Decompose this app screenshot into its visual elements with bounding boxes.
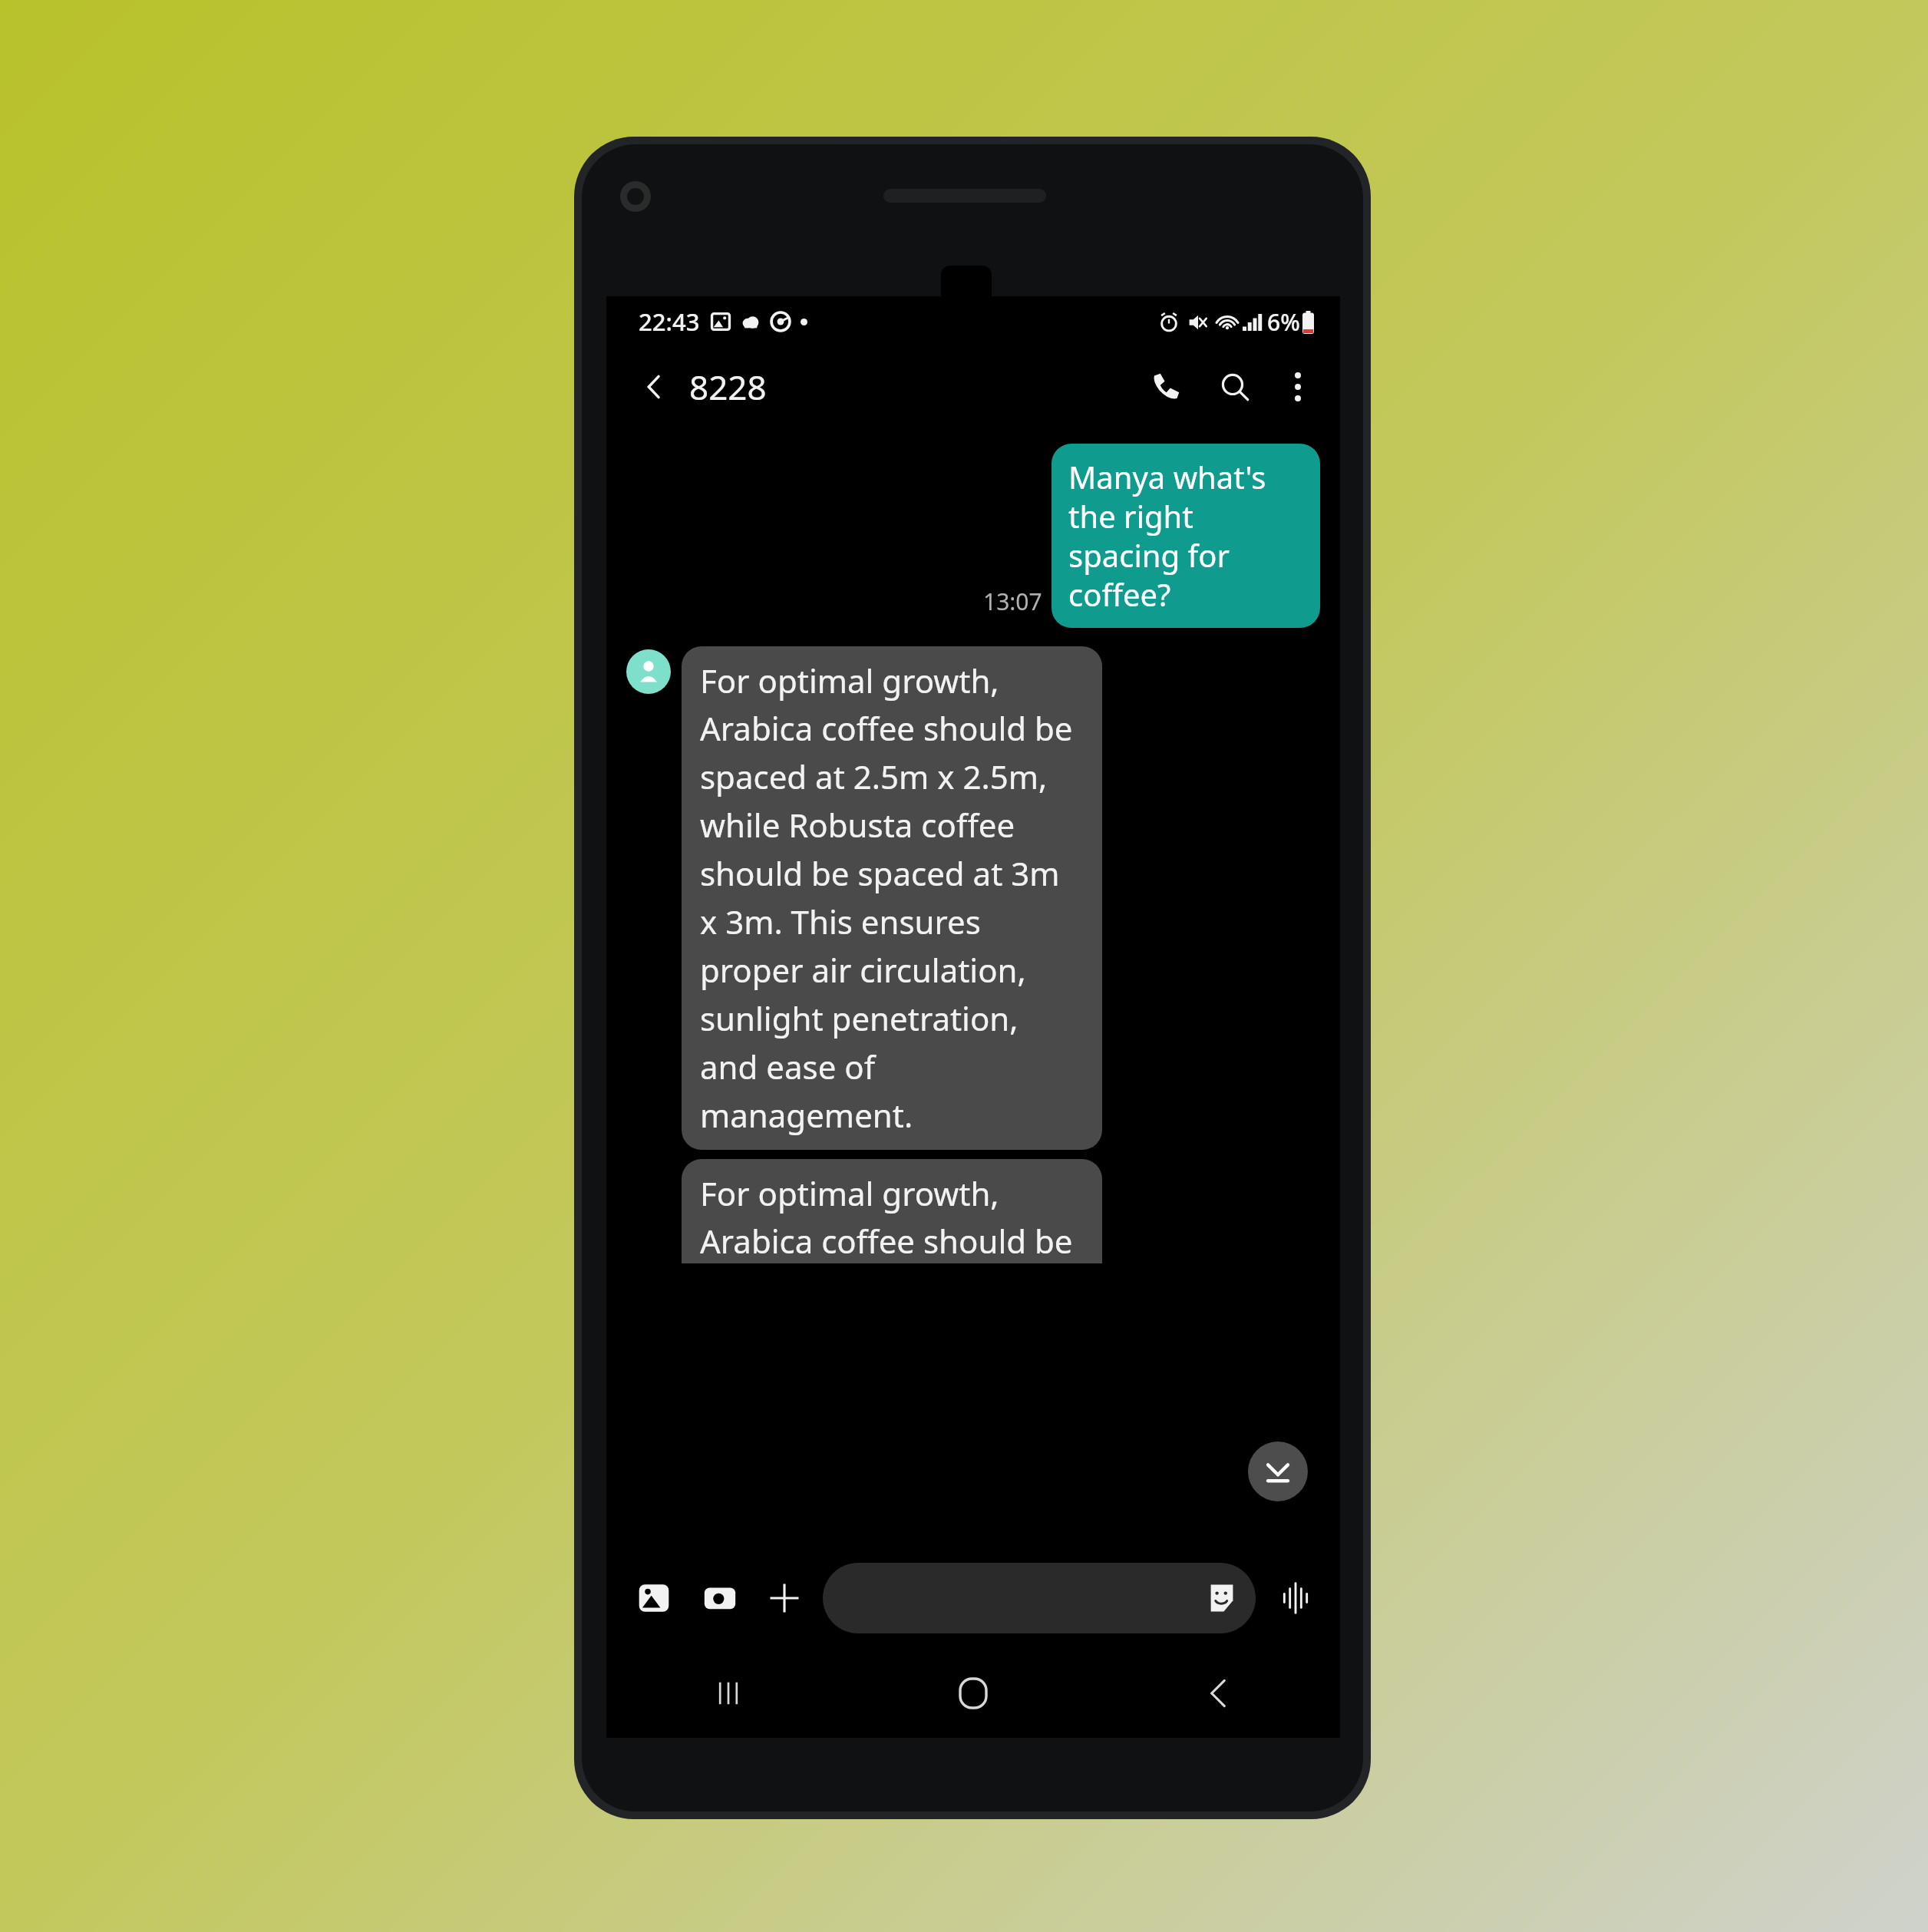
staticText: 13:07 bbox=[983, 586, 1042, 617]
button[interactable]: Back bbox=[1095, 1649, 1340, 1738]
button[interactable]: Gallery bbox=[628, 1572, 680, 1624]
staticText: For optimal growth, Arabica coffee shoul… bbox=[700, 659, 1084, 1138]
button[interactable]: Camera bbox=[694, 1572, 746, 1624]
button[interactable]: Stickers bbox=[823, 1563, 1256, 1633]
button[interactable]: Back bbox=[626, 359, 682, 414]
button[interactable]: For optimal growth, Arabica coffee shoul… bbox=[682, 1159, 1102, 1263]
button[interactable]: 8228 bbox=[689, 364, 767, 410]
button[interactable]: Home bbox=[850, 1649, 1095, 1738]
staticText: 6% bbox=[1267, 306, 1300, 338]
button[interactable]: More options bbox=[1269, 358, 1326, 415]
button[interactable]: Search bbox=[1205, 357, 1265, 417]
button[interactable]: Add attachment bbox=[758, 1572, 810, 1624]
button[interactable]: Voice message bbox=[1268, 1570, 1323, 1626]
staticText: 22:43 bbox=[639, 305, 700, 338]
staticText: Manya what's the right spacing for coffe… bbox=[1068, 456, 1303, 616]
button[interactable]: For optimal growth, Arabica coffee shoul… bbox=[682, 646, 1102, 1150]
button[interactable]: Contact avatar bbox=[626, 649, 671, 694]
staticText: For optimal growth, Arabica coffee shoul… bbox=[700, 1171, 1084, 1263]
button[interactable]: Stickers bbox=[1205, 1581, 1239, 1615]
button[interactable]: Manya what's the right spacing for coffe… bbox=[1051, 444, 1320, 628]
button[interactable]: Recent apps bbox=[606, 1649, 850, 1738]
button[interactable]: Call bbox=[1136, 357, 1196, 417]
button[interactable]: Scroll to bottom bbox=[1248, 1442, 1308, 1501]
